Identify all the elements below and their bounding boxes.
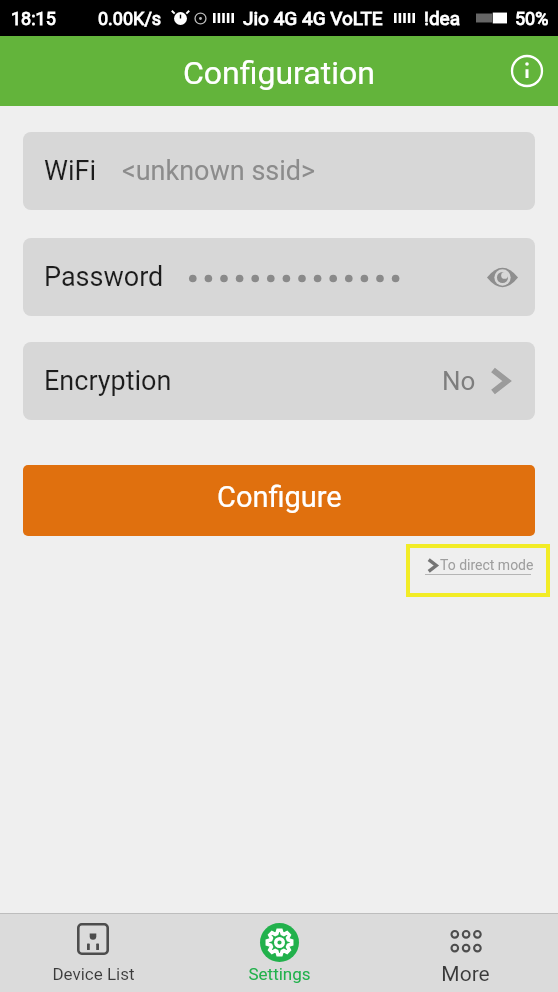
staticText: 18:15: [11, 8, 56, 29]
staticText: No: [442, 366, 476, 396]
button[interactable]: WiFi: [23, 132, 535, 210]
staticText: Configuration: [183, 54, 375, 92]
staticText: To direct mode: [440, 557, 534, 573]
staticText: 0.00K/s: [98, 8, 162, 29]
button[interactable]: Settings: [186, 914, 372, 992]
staticText: Encryption: [44, 365, 172, 397]
staticText: Settings: [248, 964, 311, 984]
staticText: More: [441, 962, 490, 987]
staticText: Password: [44, 261, 164, 293]
button[interactable]: Info: [503, 47, 551, 95]
button[interactable]: Device List: [0, 914, 186, 992]
staticText: Jio 4G 4G VoLTE: [243, 7, 383, 29]
staticText: WiFi: [44, 155, 97, 187]
staticText: Device List: [52, 964, 135, 984]
staticText: 50%: [515, 8, 549, 29]
button[interactable]: Password: [23, 238, 535, 316]
staticText: Configure: [217, 480, 342, 514]
staticText: !dea: [424, 7, 461, 29]
button[interactable]: To direct mode: [406, 544, 550, 597]
button[interactable]: More: [372, 914, 558, 992]
button[interactable]: Configure: [23, 465, 535, 536]
staticText: <unknown ssid>: [122, 155, 316, 187]
button[interactable]: Encryption: [23, 342, 535, 420]
